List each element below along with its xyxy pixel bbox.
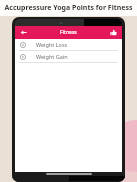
staticText: Weight Loss — [36, 41, 68, 48]
staticText: Fitness — [60, 29, 77, 36]
button[interactable]: Like — [109, 28, 118, 37]
staticText: Weight Gain — [36, 53, 68, 60]
button[interactable]: Weight Loss — [15, 39, 122, 51]
button[interactable]: Weight Gain — [15, 51, 122, 63]
staticText: Accupressure Yoga Points for Fitness — [4, 3, 133, 13]
button[interactable]: Back — [19, 28, 28, 37]
